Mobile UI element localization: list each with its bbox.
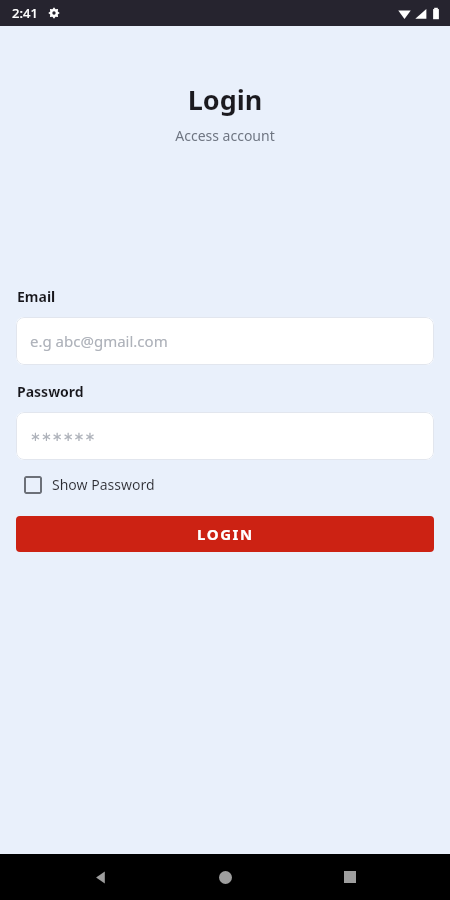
- button[interactable]: Back: [77, 854, 125, 900]
- staticText: Show Password: [52, 475, 155, 494]
- button[interactable]: ∗∗∗∗∗∗: [16, 412, 434, 460]
- button[interactable]: Home: [201, 854, 249, 900]
- staticText: Login: [0, 81, 450, 118]
- button[interactable]: Show Password: [18, 470, 163, 499]
- button[interactable]: Recent apps: [326, 854, 374, 900]
- staticText: LOGIN: [197, 524, 254, 544]
- button[interactable]: LOGIN: [16, 516, 434, 552]
- staticText: 2:41: [12, 4, 38, 22]
- staticText: Access account: [0, 126, 450, 145]
- staticText: ∗∗∗∗∗∗: [30, 429, 96, 444]
- staticText: Email: [17, 287, 56, 306]
- button[interactable]: e.g abc@gmail.com: [16, 317, 434, 365]
- staticText: Password: [17, 382, 84, 401]
- staticText: e.g abc@gmail.com: [30, 331, 168, 351]
